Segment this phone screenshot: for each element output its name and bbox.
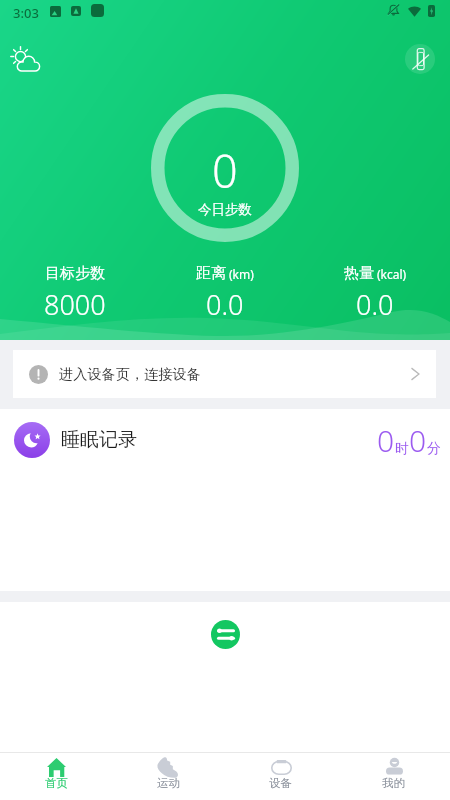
staticText: (kcal): [377, 266, 407, 282]
button[interactable]: 我的: [337, 753, 450, 800]
staticText: 设备: [269, 776, 292, 790]
button[interactable]: 运动: [112, 753, 224, 800]
staticText: 0: [409, 420, 427, 461]
button[interactable]: 睡眠记录: [0, 409, 450, 471]
staticText: 8000: [44, 286, 106, 323]
staticText: 0.0: [206, 286, 244, 323]
staticText: 首页: [45, 776, 68, 790]
staticText: (km): [229, 266, 254, 282]
staticText: 目标步数: [45, 264, 105, 283]
button[interactable]: 进入设备页，连接设备: [13, 350, 436, 398]
staticText: 0: [377, 420, 395, 461]
staticText: 今日步数: [198, 201, 252, 218]
staticText: 距离: [196, 264, 226, 283]
button[interactable]: Weather: [5, 41, 43, 79]
staticText: 3:03: [13, 4, 39, 22]
staticText: 分: [427, 440, 441, 458]
button[interactable]: 设备: [224, 753, 337, 800]
staticText: 0.0: [356, 286, 394, 323]
staticText: 热量: [344, 264, 374, 283]
staticText: 时: [395, 440, 409, 458]
staticText: 0: [212, 140, 238, 201]
staticText: 运动: [157, 776, 180, 790]
staticText: 我的: [382, 776, 405, 790]
staticText: 睡眠记录: [61, 428, 137, 452]
button[interactable]: Device not connected: [405, 44, 435, 74]
button[interactable]: 首页: [0, 753, 112, 800]
staticText: 进入设备页，连接设备: [59, 365, 201, 383]
button[interactable]: Settings: [211, 620, 240, 649]
